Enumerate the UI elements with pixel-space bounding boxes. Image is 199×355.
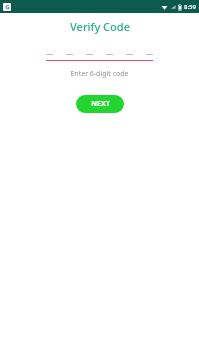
- staticText: NEXT: [91, 99, 110, 109]
- other: App notification: [3, 3, 11, 11]
- staticText: Enter 6-digit code: [70, 69, 129, 79]
- button[interactable]: NEXT: [76, 95, 124, 113]
- button[interactable]: [46, 54, 153, 61]
- staticText: Verify Code: [70, 19, 130, 34]
- staticText: 8:59: [184, 3, 196, 11]
- staticText: G: [5, 3, 10, 11]
